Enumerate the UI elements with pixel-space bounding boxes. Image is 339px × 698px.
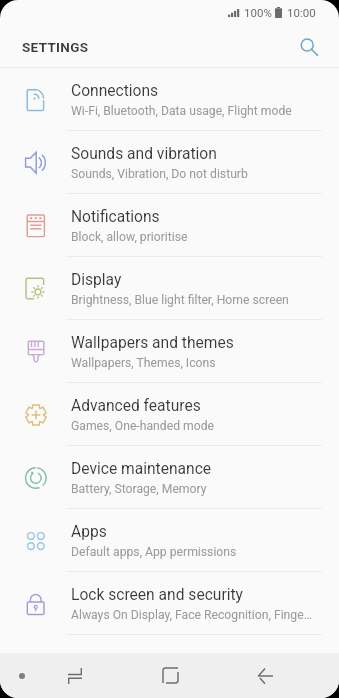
staticText: Wallpapers and themes — [71, 334, 234, 352]
staticText: Games, One-handed mode — [71, 419, 215, 433]
button[interactable]: Apps — [0, 509, 339, 572]
staticText: SETTINGS — [22, 39, 89, 55]
button[interactable]: Sounds and vibration — [0, 131, 339, 194]
button[interactable]: Connections — [0, 68, 339, 131]
staticText: 100% — [244, 6, 272, 19]
button[interactable]: Notifications — [0, 194, 339, 257]
button[interactable]: Lock screen and security — [0, 572, 339, 635]
staticText: Always On Display, Face Recognition, Fin… — [71, 608, 312, 622]
staticText: Device maintenance — [71, 460, 212, 478]
staticText: 10:00 — [287, 6, 316, 19]
staticText: Battery, Storage, Memory — [71, 482, 207, 496]
button[interactable]: Device maintenance — [0, 446, 339, 509]
staticText: Apps — [71, 523, 107, 541]
button[interactable]: Advanced features — [0, 383, 339, 446]
button[interactable]: Wallpapers and themes — [0, 320, 339, 383]
staticText: Advanced features — [71, 397, 201, 415]
staticText: Block, allow, prioritise — [71, 230, 188, 244]
staticText: Sounds and vibration — [71, 145, 217, 163]
staticText: Brightness, Blue light filter, Home scre… — [71, 293, 289, 307]
staticText: Default apps, App permissions — [71, 545, 237, 559]
button[interactable]: Back — [243, 653, 287, 698]
button[interactable]: Display — [0, 257, 339, 320]
staticText: Sounds, Vibration, Do not disturb — [71, 167, 248, 181]
staticText: Lock screen and security — [71, 586, 243, 604]
button[interactable]: Recents — [53, 653, 97, 698]
staticText: Connections — [71, 82, 159, 100]
button[interactable]: Search — [291, 29, 327, 65]
button[interactable]: Home — [148, 653, 192, 698]
staticText: Notifications — [71, 208, 160, 226]
staticText: Wallpapers, Themes, Icons — [71, 356, 216, 370]
staticText: Display — [71, 271, 122, 289]
staticText: Wi-Fi, Bluetooth, Data usage, Flight mod… — [71, 104, 292, 118]
